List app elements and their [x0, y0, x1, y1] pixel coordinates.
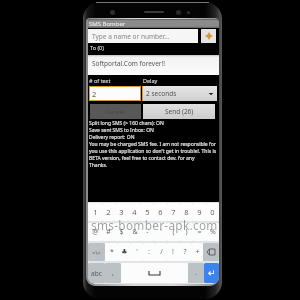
staticText: 2 [106, 207, 111, 217]
staticText: / [160, 247, 163, 257]
button[interactable]: ♣ [118, 243, 131, 261]
button[interactable]: 2 [89, 86, 141, 101]
staticText: - [146, 227, 149, 237]
staticText: . [195, 268, 197, 278]
button[interactable]: ( [167, 223, 180, 241]
staticText: ! [172, 247, 174, 257]
staticText: 2 seconds [146, 89, 208, 98]
staticText: , [112, 268, 114, 278]
staticText: BETA version, feel free to contact dev. … [89, 155, 219, 162]
staticText: 4 [132, 207, 137, 217]
staticText: * [110, 247, 114, 257]
button[interactable]: ! [167, 243, 179, 261]
staticText: 5 [145, 207, 150, 217]
button[interactable]: $ [115, 223, 128, 241]
staticText: & [132, 227, 138, 237]
button[interactable]: 0 [206, 203, 219, 221]
button[interactable]: 8 [180, 203, 193, 221]
button[interactable]: Type a name or number... [88, 29, 198, 43]
staticText: Send (26) [165, 107, 194, 116]
staticText: 3 [119, 207, 124, 217]
button[interactable]: 2 seconds [142, 86, 217, 101]
staticText: + [195, 247, 200, 257]
staticText: # [106, 227, 111, 237]
staticText: ' [160, 227, 162, 237]
staticText: ♣ [121, 248, 128, 256]
staticText: Save sent SMS to Inbox: ON [89, 127, 154, 134]
staticText: abc [91, 269, 102, 278]
staticText: you use this application so don't get in… [89, 148, 219, 155]
button[interactable]: Backspace [203, 243, 219, 261]
button[interactable]: . [188, 263, 204, 283]
staticText: Cancel [106, 108, 125, 116]
staticText: Split long SMS (> 160 chars): ON [89, 120, 164, 127]
button[interactable]: 5 [141, 203, 154, 221]
staticText: You may be charged SMS fee. I am not res… [89, 141, 219, 148]
staticText: 2 [92, 89, 97, 99]
button[interactable]: : [143, 243, 155, 261]
button[interactable]: Space [121, 263, 188, 283]
button[interactable]: # [102, 223, 115, 241]
button[interactable]: Add recipient [201, 29, 216, 43]
button[interactable]: 3 [115, 203, 128, 221]
button[interactable]: = [193, 223, 206, 241]
staticText: ( [172, 227, 175, 237]
staticText: Thanks. [89, 162, 108, 169]
button[interactable]: 7 [167, 203, 180, 221]
button[interactable]: ) [180, 223, 193, 241]
button[interactable]: / [155, 243, 167, 261]
button[interactable]: & [128, 223, 141, 241]
button[interactable]: =\< [88, 243, 105, 261]
staticText: Softportal.Com forever!! [92, 59, 166, 68]
button[interactable]: ? [179, 243, 191, 261]
staticText: Delivery report: ON [89, 134, 135, 141]
button[interactable]: @ [88, 223, 102, 241]
staticText: 6 [158, 207, 163, 217]
button[interactable]: Enter [204, 263, 219, 283]
staticText: $ [119, 227, 124, 237]
staticText: % [210, 227, 216, 237]
button[interactable]: - [141, 223, 154, 241]
button[interactable]: 9 [193, 203, 206, 221]
staticText: ' [136, 247, 138, 257]
staticText: 0 [210, 207, 215, 217]
button[interactable]: 1 [88, 203, 102, 221]
staticText: To (0) [90, 44, 104, 51]
button[interactable]: 6 [154, 203, 167, 221]
button[interactable]: + [191, 243, 203, 261]
button[interactable]: abc [88, 263, 105, 283]
staticText: ↵ [208, 268, 216, 278]
button[interactable]: ' [131, 243, 143, 261]
staticText: = [197, 227, 202, 237]
staticText: 9 [197, 207, 202, 217]
staticText: # of text [89, 77, 111, 84]
button[interactable]: * [105, 243, 118, 261]
button[interactable]: 2 [102, 203, 115, 221]
button[interactable]: ' [154, 223, 167, 241]
staticText: : [148, 247, 150, 257]
button[interactable]: , [105, 263, 121, 283]
button[interactable]: Send (26) [143, 104, 215, 119]
button[interactable]: 4 [128, 203, 141, 221]
staticText: Delay [143, 77, 158, 84]
staticText: 1 [93, 207, 98, 217]
staticText: Type a name or number... [92, 32, 170, 41]
staticText: =\< [92, 249, 101, 256]
staticText: sms-bomber-apk.com [91, 217, 218, 233]
button[interactable]: Softportal.Com forever!! [88, 55, 219, 75]
staticText: ) [185, 227, 188, 237]
staticText: @ [92, 227, 99, 237]
staticText: 8 [184, 207, 189, 217]
staticText: SMS Bomber [89, 20, 126, 28]
button[interactable]: % [206, 223, 219, 241]
staticText: ? [183, 247, 187, 257]
staticText: 7 [171, 207, 176, 217]
